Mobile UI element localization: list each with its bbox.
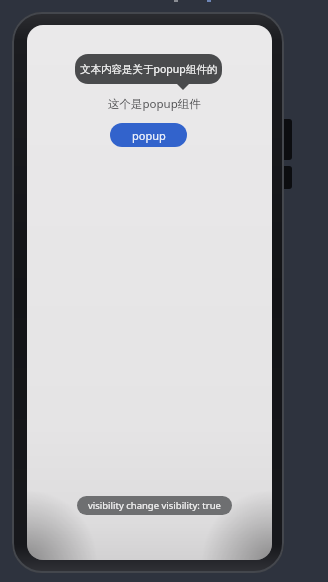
staticText: 文本内容是关于popup组件的 [80,62,218,76]
staticText: 这个是popup组件 [108,96,201,112]
staticText: visibility change visibility: true [88,499,221,512]
button[interactable]: popup [110,123,187,147]
staticText: popup [132,128,166,143]
